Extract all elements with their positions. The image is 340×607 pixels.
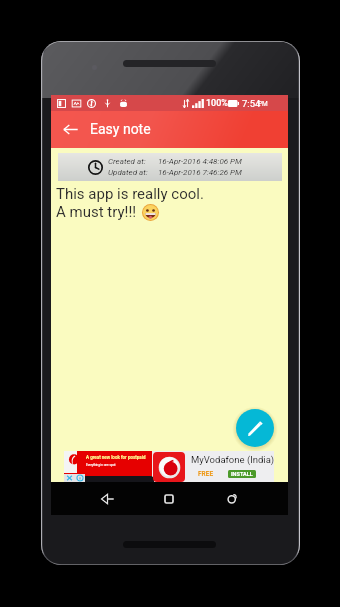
button[interactable]: Back <box>57 116 84 143</box>
staticText: Everything in one spot <box>86 463 116 467</box>
staticText: 7:54 <box>242 98 261 109</box>
staticText: INSTALL <box>231 471 253 477</box>
button[interactable]: Recent apps <box>221 488 243 509</box>
staticText: Updated at: <box>108 168 148 177</box>
button[interactable]: Back <box>94 488 119 509</box>
staticText: FREE <box>198 470 214 478</box>
button[interactable]: Edit note <box>236 409 274 447</box>
staticText: Easy note <box>90 121 151 137</box>
staticText: 16-Apr-2016 7:46:26 PM <box>158 168 242 177</box>
staticText: 16-Apr-2016 4:48:06 PM <box>158 157 242 166</box>
staticText: This app is really cool. <box>56 185 204 203</box>
staticText: A must try!!! <box>56 203 137 221</box>
staticText: MyVodafone (India) <box>191 454 275 465</box>
button[interactable]: Home <box>158 488 180 509</box>
button[interactable]: INSTALL <box>228 470 256 478</box>
staticText: 100% <box>206 98 228 109</box>
staticText: A great new look for postpaid <box>86 455 146 460</box>
staticText: Created at: <box>108 157 146 166</box>
button[interactable]: A great new look for postpaid <box>64 451 274 482</box>
button[interactable]: Created at: <box>58 153 282 181</box>
staticText: PM <box>258 100 268 108</box>
